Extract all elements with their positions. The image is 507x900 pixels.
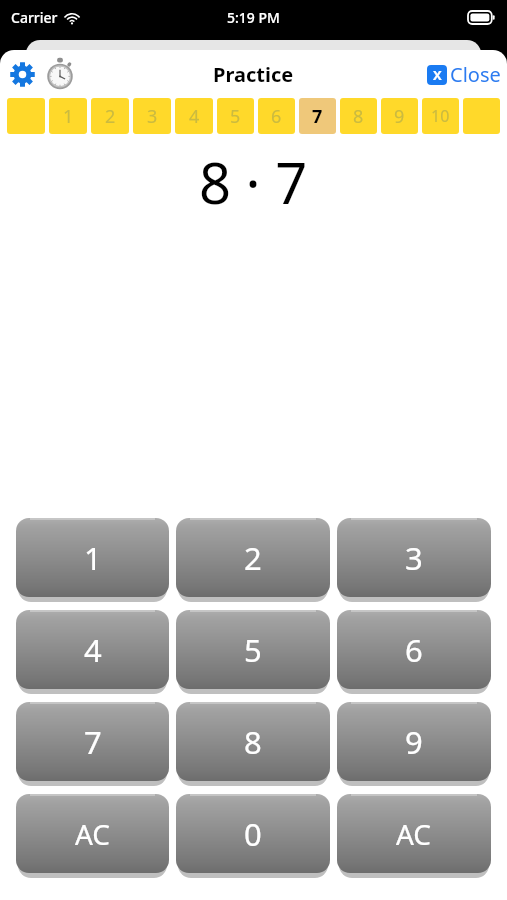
button[interactable]: 9 xyxy=(337,702,491,781)
button[interactable]: Settings xyxy=(0,58,40,90)
button[interactable]: 10 xyxy=(422,98,459,134)
button[interactable]: AC xyxy=(337,794,491,873)
staticText: AC xyxy=(75,815,111,853)
staticText: 10 xyxy=(431,105,450,127)
staticText: 3 xyxy=(405,537,423,579)
button[interactable]: 3 xyxy=(337,518,491,597)
staticText: 7 xyxy=(312,104,323,129)
button[interactable]: X xyxy=(427,61,501,88)
staticText: 6 xyxy=(405,629,423,671)
staticText: 0 xyxy=(244,813,262,855)
button[interactable]: 9 xyxy=(381,98,418,134)
staticText: 1 xyxy=(63,104,74,129)
button[interactable]: 1 xyxy=(16,518,169,597)
button[interactable]: 4 xyxy=(16,610,169,689)
staticText: 4 xyxy=(189,104,200,129)
button[interactable]: 4 xyxy=(175,98,213,134)
button[interactable]: AC xyxy=(16,794,169,873)
staticText: 8 xyxy=(353,104,364,129)
staticText: 3 xyxy=(147,104,158,129)
button[interactable]: 0 xyxy=(176,794,330,873)
staticText: 5 xyxy=(230,104,241,129)
staticText: 6 xyxy=(271,104,282,129)
staticText: 9 xyxy=(405,721,423,763)
button[interactable]: 5 xyxy=(176,610,330,689)
button[interactable] xyxy=(7,98,45,134)
button[interactable]: Timer xyxy=(40,54,80,94)
staticText: 8 · 7 xyxy=(199,144,308,220)
staticText: Carrier xyxy=(11,8,58,27)
button[interactable]: 5 xyxy=(217,98,254,134)
staticText: 8 xyxy=(244,721,262,763)
button[interactable] xyxy=(463,98,500,134)
button[interactable]: 8 xyxy=(340,98,377,134)
button[interactable]: 6 xyxy=(337,610,491,689)
button[interactable]: 8 xyxy=(176,702,330,781)
button[interactable]: 2 xyxy=(91,98,129,134)
staticText: 2 xyxy=(105,104,116,129)
staticText: 7 xyxy=(84,721,102,763)
staticText: 4 xyxy=(84,629,102,671)
button[interactable]: 6 xyxy=(258,98,295,134)
staticText: 5 xyxy=(244,629,262,671)
staticText: 9 xyxy=(394,104,405,129)
staticText: 5:19 PM xyxy=(227,8,280,27)
button[interactable]: 7 xyxy=(299,98,336,134)
staticText: 1 xyxy=(84,537,102,579)
staticText: Practice xyxy=(213,61,294,88)
staticText: X xyxy=(433,66,442,84)
button[interactable]: 2 xyxy=(176,518,330,597)
button[interactable]: 7 xyxy=(16,702,169,781)
button[interactable]: 3 xyxy=(133,98,171,134)
button[interactable]: 1 xyxy=(49,98,87,134)
staticText: 2 xyxy=(244,537,262,579)
staticText: AC xyxy=(396,815,432,853)
staticText: Close xyxy=(450,61,501,88)
